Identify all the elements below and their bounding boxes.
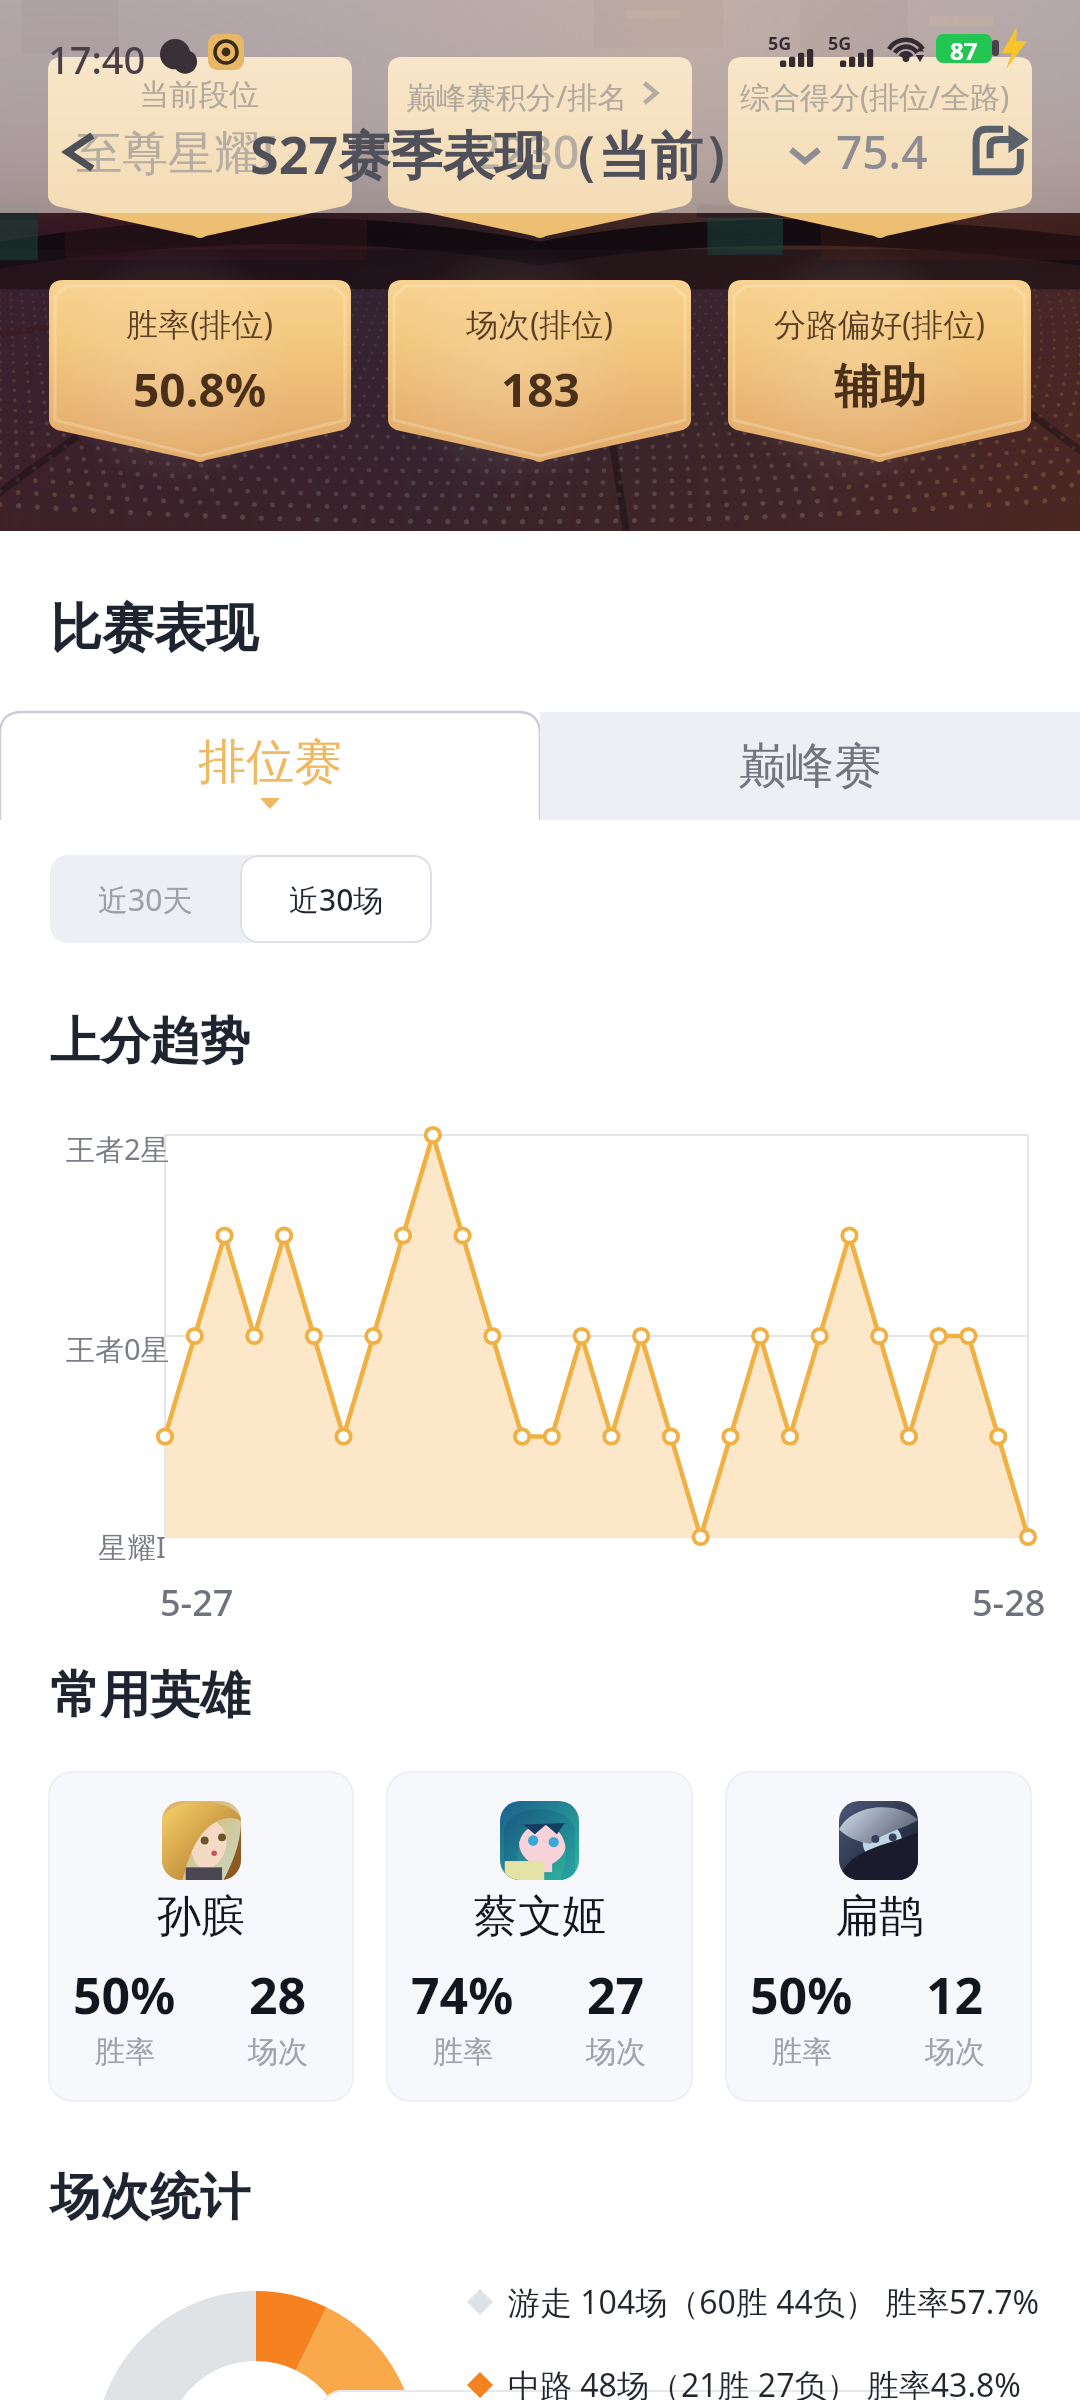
- staticText: 王者2星: [66, 1129, 170, 1169]
- staticText: 近30天: [98, 879, 193, 920]
- button[interactable]: 孙膑: [48, 1771, 354, 2102]
- staticText: 胜率(排位): [126, 302, 274, 346]
- button[interactable]: Back: [55, 126, 107, 178]
- staticText: S27赛季表现（当前）: [250, 118, 755, 189]
- staticText: 巅峰赛积分/排名: [406, 76, 628, 117]
- staticText: 5-28: [972, 1578, 1046, 1627]
- staticText: 场次: [586, 2033, 646, 2071]
- staticText: 场次统计: [50, 2166, 250, 2229]
- staticText: 5-27: [160, 1578, 234, 1627]
- staticText: 50%: [73, 1961, 176, 2029]
- staticText: 5G: [768, 31, 792, 56]
- staticText: 蔡文姬: [474, 1889, 606, 1944]
- staticText: 当前段位: [139, 76, 259, 114]
- button[interactable]: 胜率(排位): [49, 280, 351, 464]
- staticText: 孙膑: [157, 1889, 245, 1944]
- staticText: 28: [249, 1961, 307, 2029]
- staticText: 183: [501, 358, 580, 421]
- staticText: 27: [587, 1961, 645, 2029]
- staticText: 星耀I: [98, 1527, 166, 1567]
- button[interactable]: 扁鹊: [725, 1771, 1032, 2102]
- staticText: 巅峰赛: [738, 736, 882, 796]
- button[interactable]: [728, 57, 1032, 212]
- button[interactable]: [388, 57, 692, 212]
- staticText: 场次: [248, 2033, 308, 2071]
- staticText: 5G: [828, 31, 852, 56]
- button[interactable]: 近30场: [240, 855, 432, 943]
- staticText: 扁鹊: [835, 1889, 923, 1944]
- button[interactable]: 蔡文姬: [386, 1771, 693, 2102]
- staticText: 辅助: [834, 358, 926, 416]
- staticText: 胜率: [95, 2033, 155, 2071]
- button[interactable]: 排位赛: [0, 712, 540, 820]
- staticText: 综合得分(排位/全路): [740, 76, 1010, 117]
- staticText: 常用英雄: [50, 1664, 250, 1727]
- staticText: 75.4: [836, 120, 928, 183]
- staticText: 王者0星: [66, 1329, 170, 1369]
- staticText: 排位赛: [198, 732, 342, 792]
- staticText: 胜率: [772, 2033, 832, 2071]
- staticText: 比赛表现: [50, 596, 258, 662]
- staticText: 50.8%: [133, 358, 267, 421]
- staticText: 中路 48场（21胜 27负） 胜率43.8%: [508, 2363, 1021, 2400]
- staticText: 87: [950, 34, 978, 63]
- staticText: 2230: [474, 120, 580, 183]
- staticText: 游走 104场（60胜 44负） 胜率57.7%: [508, 2280, 1040, 2324]
- button[interactable]: 巅峰赛: [540, 712, 1080, 820]
- staticText: 上分趋势: [50, 1010, 250, 1073]
- button[interactable]: 近30天: [50, 855, 240, 943]
- button[interactable]: [48, 57, 352, 212]
- button[interactable]: 分路偏好(排位): [728, 280, 1031, 464]
- button[interactable]: 场次(排位): [388, 280, 691, 464]
- staticText: 胜率: [433, 2033, 493, 2071]
- staticText: 50%: [750, 1961, 853, 2029]
- staticText: 12: [926, 1961, 984, 2029]
- staticText: 17:40: [48, 33, 146, 85]
- button[interactable]: Share: [975, 124, 1029, 176]
- staticText: 74%: [411, 1961, 514, 2029]
- staticText: 场次(排位): [466, 302, 614, 346]
- staticText: 场次: [925, 2033, 985, 2071]
- staticText: 分路偏好(排位): [774, 302, 986, 346]
- staticText: 至尊星耀I: [76, 120, 277, 183]
- staticText: 近30场: [289, 879, 384, 920]
